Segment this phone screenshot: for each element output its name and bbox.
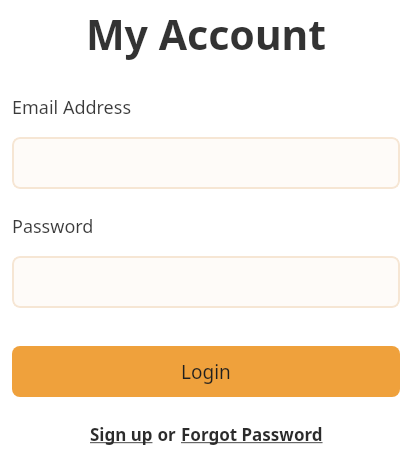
button[interactable]: Forgot Password (181, 423, 323, 446)
staticText: Password (12, 214, 94, 239)
button[interactable]: Email Address input (12, 137, 400, 189)
staticText: Login (181, 359, 231, 385)
staticText: Sign up (90, 423, 153, 446)
button[interactable]: Sign up (90, 423, 153, 446)
staticText: My Account (12, 6, 400, 62)
button[interactable]: Password input (12, 256, 400, 308)
staticText: Email Address (12, 95, 132, 120)
staticText: Forgot Password (181, 423, 323, 446)
staticText: or (153, 423, 181, 446)
button[interactable]: Login (12, 346, 400, 397)
